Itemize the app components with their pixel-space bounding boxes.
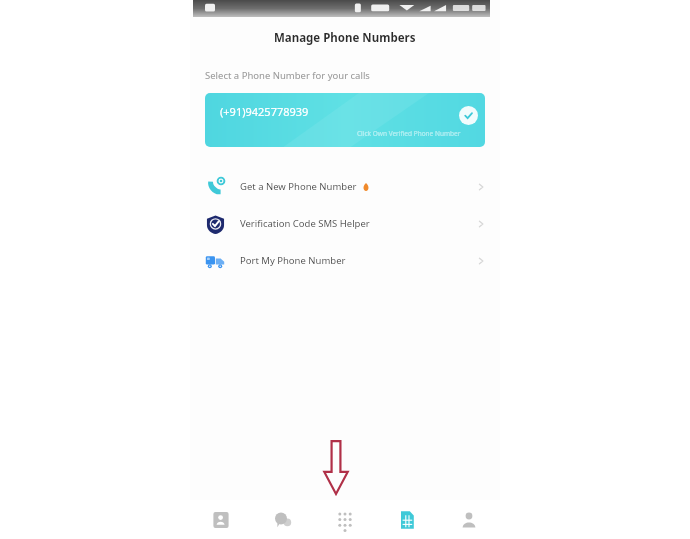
staticText: Get a New Phone Number [240, 180, 357, 193]
button[interactable]: Selected phone number [459, 106, 478, 125]
button[interactable]: Contacts [190, 500, 252, 539]
staticText: (+91)9425778939 [220, 104, 309, 119]
staticText: Verification Code SMS Helper [240, 217, 370, 230]
button[interactable]: Account [438, 500, 500, 539]
button[interactable]: (+91)9425778939 [205, 93, 485, 147]
staticText: Click Own Verified Phone Number [357, 129, 461, 138]
button[interactable]: Verification Code SMS Helper [190, 205, 500, 242]
button[interactable]: Port My Phone Number [190, 242, 500, 279]
button[interactable]: Dialpad [314, 500, 376, 539]
button[interactable]: SIM Numbers [376, 500, 438, 539]
staticText: Manage Phone Numbers [274, 30, 416, 46]
button[interactable]: Messages [252, 500, 314, 539]
button[interactable]: Get a New Phone Number [190, 168, 500, 205]
staticText: Port My Phone Number [240, 254, 346, 267]
staticText: Select a Phone Number for your calls [205, 69, 370, 82]
